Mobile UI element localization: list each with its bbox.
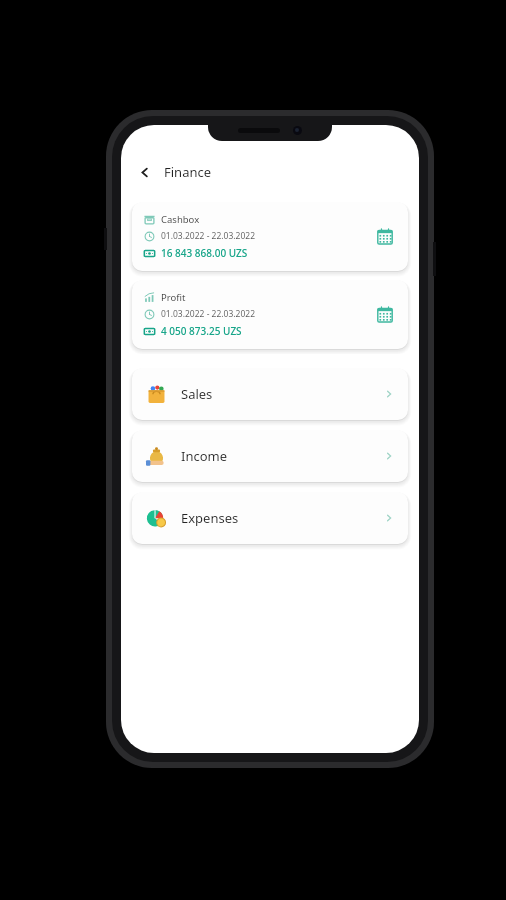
button[interactable]: Pick date range	[370, 222, 400, 252]
staticText: Income	[181, 447, 228, 465]
staticText: 01.03.2022 - 22.03.2022	[161, 308, 256, 320]
button[interactable]: Profit	[132, 280, 408, 349]
button[interactable]: Sales	[132, 368, 408, 420]
staticText: Profit	[161, 291, 186, 304]
staticText: 16 843 868.00 UZS	[161, 246, 248, 260]
button[interactable]: Expenses	[132, 492, 408, 544]
staticText: Sales	[181, 385, 213, 403]
staticText: 4 050 873.25 UZS	[161, 324, 242, 338]
button[interactable]: Pick date range	[370, 300, 400, 330]
staticText: Finance	[164, 163, 212, 181]
staticText: Expenses	[181, 509, 239, 527]
button[interactable]: Income	[132, 430, 408, 482]
staticText: 01.03.2022 - 22.03.2022	[161, 230, 256, 242]
button[interactable]: Cashbox	[132, 202, 408, 271]
staticText: Cashbox	[161, 213, 200, 226]
button[interactable]: Back	[133, 161, 155, 183]
